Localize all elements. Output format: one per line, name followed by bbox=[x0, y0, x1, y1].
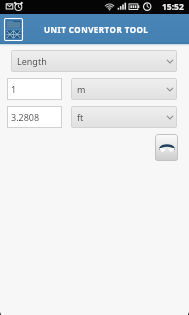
button[interactable]: Length bbox=[11, 50, 177, 72]
button[interactable]: ft bbox=[71, 106, 177, 128]
button[interactable]: m bbox=[71, 78, 177, 100]
staticText: 1 bbox=[11, 83, 17, 95]
staticText: Length bbox=[17, 55, 47, 67]
staticText: 3.2808 bbox=[11, 111, 40, 123]
staticText: m bbox=[77, 83, 86, 95]
staticText: ft bbox=[77, 111, 84, 123]
button[interactable]: 3.2808 bbox=[7, 106, 62, 128]
button[interactable]: Convert bbox=[155, 134, 178, 161]
staticText: 15:52 bbox=[162, 1, 184, 13]
staticText: UNIT CONVERTOR TOOL bbox=[44, 24, 149, 35]
button[interactable]: 1 bbox=[7, 78, 62, 100]
button[interactable]: UNIT CONVERTOR TOOL bbox=[0, 14, 189, 44]
